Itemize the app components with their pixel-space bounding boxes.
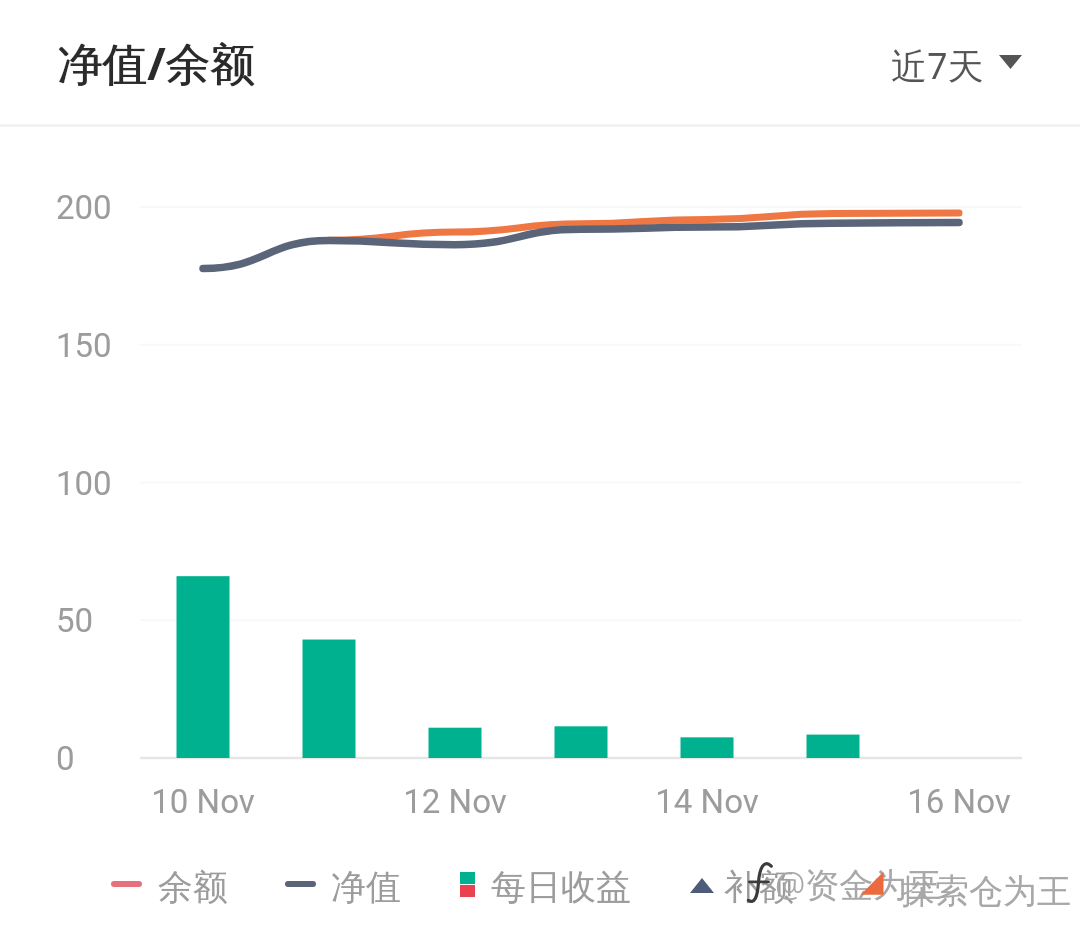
staticText: 净值/余额 — [58, 32, 256, 93]
staticText: 10 Nov — [113, 782, 293, 821]
staticText: 150 — [56, 326, 112, 365]
staticText: 0 — [56, 739, 75, 778]
button[interactable]: 每日收益 — [452, 858, 642, 910]
staticText: 探索仓为王 — [901, 870, 1071, 913]
staticText: 净值/余额 — [57, 32, 255, 93]
staticText: 100 — [56, 464, 112, 503]
staticText: 50 — [56, 601, 94, 640]
button[interactable]: 补额 — [684, 858, 796, 910]
staticText: 每日收益 — [491, 865, 631, 909]
staticText: 余额 — [158, 865, 228, 909]
staticText: 200 — [56, 188, 112, 227]
staticText: 12 Nov — [365, 782, 545, 821]
button[interactable]: 净值/余额 — [57, 32, 255, 93]
button[interactable]: 选择时间范围 近7天 — [874, 24, 1036, 102]
button[interactable]: 余额 — [100, 858, 236, 910]
staticText: 补额 — [724, 865, 794, 909]
staticText: 14 Nov — [617, 782, 797, 821]
staticText: 16 Nov — [869, 782, 1049, 821]
staticText: 净值 — [331, 865, 401, 909]
button[interactable]: 净值 — [275, 858, 409, 910]
staticText: @资金为王 — [775, 861, 942, 907]
staticText: 近7天 — [891, 41, 984, 90]
